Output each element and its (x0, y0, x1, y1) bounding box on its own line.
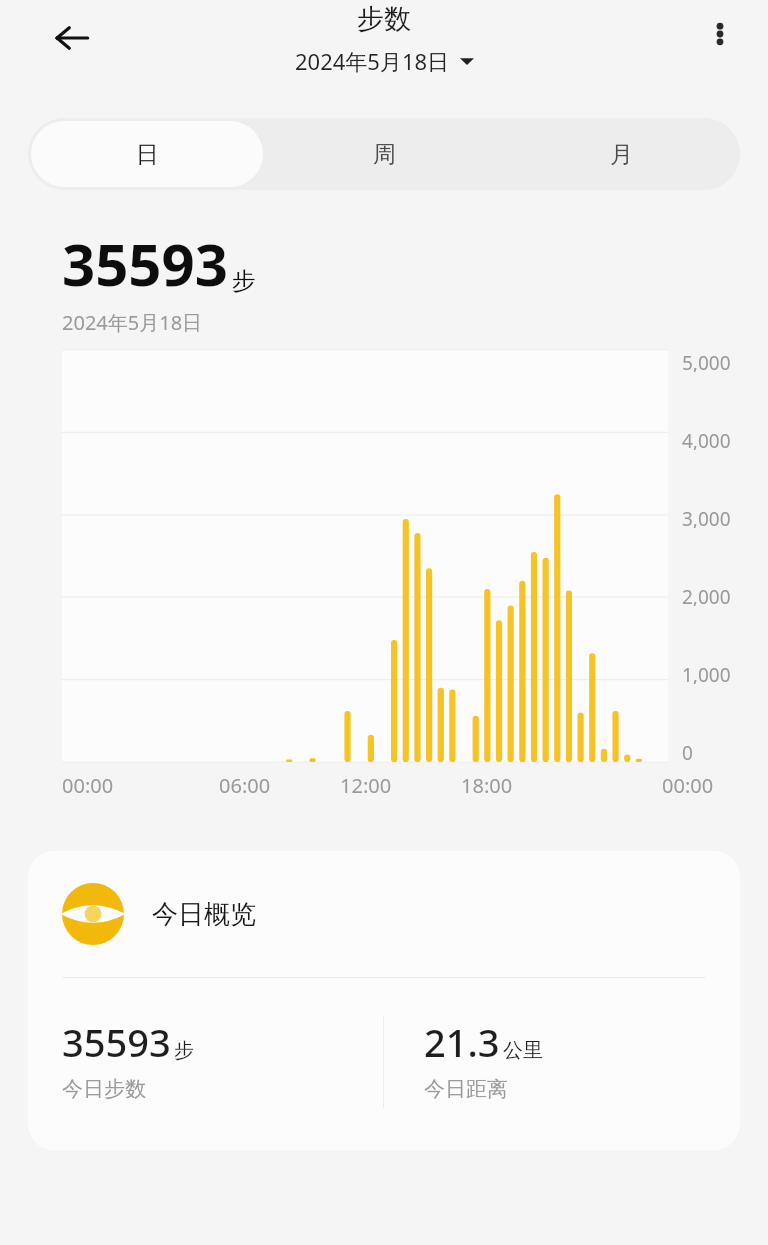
button[interactable]: 21.3 (424, 1016, 740, 1102)
staticText: 21.3 (424, 1016, 500, 1068)
staticText: 00:00 (62, 772, 114, 799)
staticText: 2024年5月18日 (295, 46, 450, 76)
staticText: 2,000 (682, 584, 731, 606)
staticText: 今日距离 (424, 1076, 508, 1102)
staticText: 18:00 (461, 772, 513, 799)
staticText: 0 (682, 740, 693, 762)
staticText: 今日概览 (152, 898, 256, 931)
staticText: 12:00 (340, 772, 392, 799)
button[interactable]: 月 (506, 121, 737, 187)
staticText: 月 (610, 140, 633, 169)
staticText: 4,000 (682, 428, 731, 450)
staticText: 1,000 (682, 662, 731, 684)
staticText: 35593 (62, 224, 228, 303)
staticText: 周 (373, 140, 396, 169)
staticText: 2024年5月18日 (62, 309, 203, 336)
button[interactable]: Back (40, 6, 104, 70)
staticText: 06:00 (219, 772, 271, 799)
button[interactable]: 今日概览 (28, 851, 740, 1150)
staticText: 今日步数 (62, 1076, 146, 1102)
staticText: 00:00 (662, 772, 714, 799)
staticText: 日 (136, 140, 159, 169)
button[interactable]: More options (690, 4, 750, 64)
button[interactable]: 35593 (62, 1016, 383, 1102)
button[interactable]: 2024年5月18日 (289, 44, 480, 78)
staticText: 5,000 (682, 350, 731, 372)
staticText: 3,000 (682, 506, 731, 528)
staticText: 步 (232, 266, 256, 296)
staticText: 步数 (357, 2, 411, 36)
button[interactable]: 日 (31, 121, 263, 187)
button[interactable]: 周 (269, 121, 500, 187)
staticText: 35593 (62, 1016, 171, 1068)
staticText: 步 (174, 1038, 194, 1063)
staticText: 公里 (503, 1038, 543, 1063)
